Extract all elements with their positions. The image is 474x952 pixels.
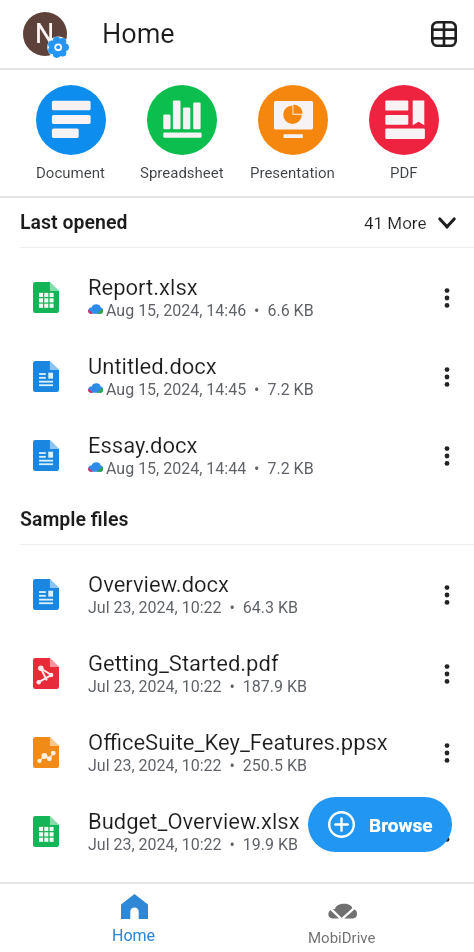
staticText: Getting_Started.pdf — [88, 651, 279, 677]
staticText: Jul 23, 2024, 10:22 • 187.9 KB — [88, 677, 307, 696]
staticText: Report.xlsx — [88, 275, 198, 301]
staticText: Spreadsheet — [140, 164, 224, 182]
button[interactable]: More options — [424, 572, 470, 618]
button[interactable]: Switch to grid view — [419, 9, 469, 59]
staticText: Untitled.docx — [88, 354, 217, 380]
button[interactable]: More options — [424, 730, 470, 776]
staticText: Presentation — [250, 164, 335, 182]
button[interactable]: Spreadsheet — [126, 70, 237, 182]
staticText: Last opened — [20, 211, 128, 234]
staticText: Budget_Overview.xlsx — [88, 809, 300, 835]
button[interactable]: 41 More — [364, 213, 456, 233]
button[interactable]: MobiDrive — [238, 882, 446, 952]
staticText: OfficeSuite_Key_Features.ppsx — [88, 730, 388, 756]
button[interactable]: Essay.docx — [0, 416, 474, 495]
button[interactable]: OfficeSuite_Key_Features.ppsx — [0, 713, 474, 792]
button[interactable]: More options — [424, 275, 470, 321]
button[interactable]: More options — [424, 809, 470, 855]
staticText: Home — [102, 18, 175, 50]
staticText: Essay.docx — [88, 433, 198, 459]
staticText: N — [35, 18, 55, 50]
button[interactable]: Account and settings — [13, 2, 77, 66]
button[interactable]: Browse — [308, 797, 452, 852]
button[interactable]: More options — [424, 354, 470, 400]
staticText: Document — [36, 164, 105, 182]
staticText: Aug 15, 2024, 14:45 • 7.2 KB — [106, 380, 314, 399]
staticText: Jul 23, 2024, 10:22 • 250.5 KB — [88, 756, 307, 775]
button[interactable]: Untitled.docx — [0, 337, 474, 416]
button[interactable]: Home — [30, 882, 238, 952]
button[interactable]: Getting_Started.pdf — [0, 634, 474, 713]
button[interactable]: More options — [424, 433, 470, 479]
staticText: Jul 23, 2024, 10:22 • 64.3 KB — [88, 598, 298, 617]
button[interactable]: Report.xlsx — [0, 258, 474, 337]
staticText: Jul 23, 2024, 10:22 • 19.9 KB — [88, 835, 298, 854]
button[interactable]: Budget_Overview.xlsx — [0, 792, 474, 871]
button[interactable]: Document — [15, 70, 126, 182]
staticText: MobiDrive — [308, 929, 376, 947]
staticText: PDF — [390, 164, 418, 182]
staticText: Aug 15, 2024, 14:44 • 7.2 KB — [106, 459, 314, 478]
button[interactable]: PDF — [348, 70, 459, 182]
staticText: Home — [112, 926, 156, 945]
button[interactable]: Overview.docx — [0, 555, 474, 634]
staticText: Aug 15, 2024, 14:46 • 6.6 KB — [106, 301, 314, 320]
staticText: Browse — [369, 814, 433, 836]
button[interactable]: Presentation — [237, 70, 348, 182]
staticText: Sample files — [20, 508, 129, 531]
button[interactable]: More options — [424, 651, 470, 697]
staticText: 41 More — [364, 213, 427, 233]
staticText: Overview.docx — [88, 572, 230, 598]
